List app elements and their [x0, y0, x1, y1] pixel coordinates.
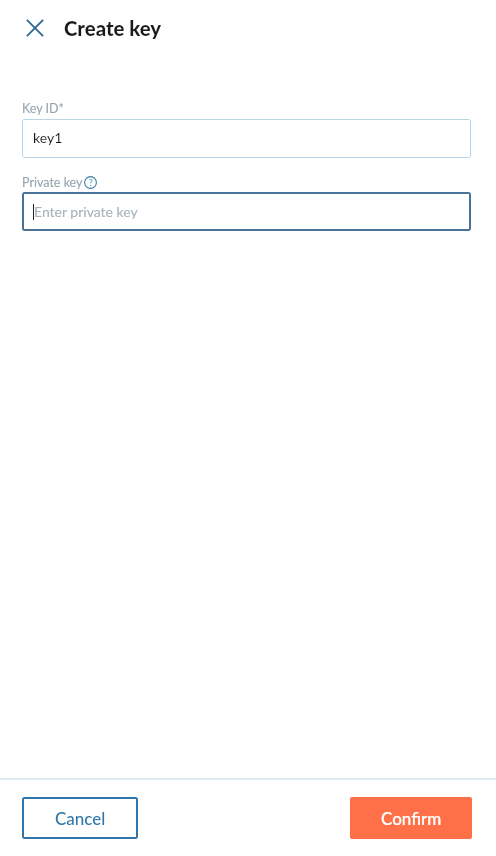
- button[interactable]: Enter private key: [22, 192, 471, 231]
- staticText: Confirm: [381, 808, 442, 828]
- button[interactable]: Help about private key: [84, 176, 97, 189]
- staticText: Cancel: [55, 808, 106, 828]
- staticText: Enter private key: [34, 203, 138, 220]
- staticText: Key ID*: [22, 101, 64, 116]
- button[interactable]: key1: [22, 119, 471, 158]
- button[interactable]: Cancel: [22, 797, 138, 839]
- button[interactable]: Confirm: [350, 797, 472, 839]
- button[interactable]: Close: [19, 12, 51, 44]
- staticText: Private key: [22, 175, 83, 190]
- staticText: key1: [33, 129, 63, 146]
- staticText: Create key: [64, 16, 162, 40]
- staticText: ?: [89, 178, 93, 188]
